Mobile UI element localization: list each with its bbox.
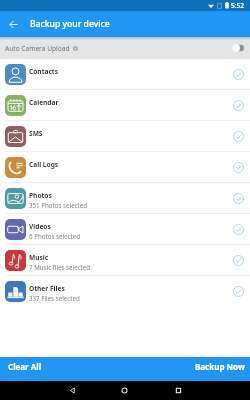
button[interactable]: Videos bbox=[0, 214, 250, 245]
staticText: Calendar bbox=[29, 98, 59, 107]
staticText: Auto Camera Upload bbox=[5, 44, 70, 53]
button[interactable]: Contacts bbox=[0, 59, 250, 90]
staticText: 337 Files selected bbox=[29, 294, 80, 302]
button[interactable]: Recents bbox=[169, 381, 188, 400]
staticText: Backup your device bbox=[30, 18, 110, 30]
button[interactable]: SMS bbox=[0, 121, 250, 152]
button[interactable]: Call Logs bbox=[0, 152, 250, 183]
staticText: 5:52 bbox=[231, 1, 245, 10]
button[interactable]: Back bbox=[0, 11, 26, 37]
staticText: 351 Photos selected bbox=[29, 201, 88, 209]
staticText: Call Logs bbox=[29, 160, 59, 169]
staticText: Videos bbox=[29, 222, 51, 231]
button[interactable]: Photos bbox=[0, 183, 250, 214]
staticText: 6 Photos selected bbox=[29, 232, 81, 240]
button[interactable]: Clear All bbox=[0, 357, 125, 381]
staticText: Other Files bbox=[29, 284, 65, 293]
staticText: Backup Now bbox=[195, 361, 245, 372]
staticText: Clear All bbox=[8, 361, 42, 372]
button[interactable]: Back bbox=[63, 381, 82, 400]
button[interactable]: Backup Now bbox=[125, 357, 250, 381]
staticText: Contacts bbox=[29, 67, 59, 76]
staticText: Photos bbox=[29, 191, 52, 200]
button[interactable]: Auto Camera Upload bbox=[0, 37, 250, 59]
button[interactable]: Calendar bbox=[0, 90, 250, 121]
staticText: 7 Music files selected bbox=[29, 263, 91, 271]
button[interactable]: Music bbox=[0, 245, 250, 276]
button[interactable]: Home bbox=[115, 381, 134, 400]
button[interactable]: Other Files bbox=[0, 276, 250, 307]
staticText: Music bbox=[29, 253, 49, 262]
staticText: SMS bbox=[29, 129, 43, 138]
